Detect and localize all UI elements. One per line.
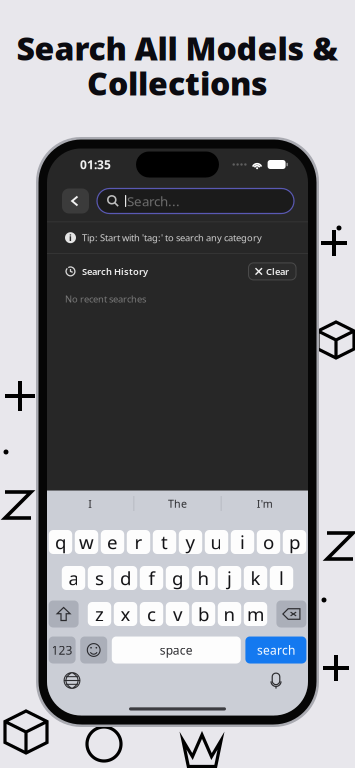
staticText: 123 xyxy=(52,642,73,658)
staticText: j xyxy=(227,566,232,590)
button[interactable]: r xyxy=(127,530,150,554)
staticText: i xyxy=(240,530,245,554)
button[interactable]: I'm xyxy=(221,490,308,516)
button[interactable]: b xyxy=(192,602,215,626)
button[interactable]: e xyxy=(101,530,124,554)
staticText: d xyxy=(120,566,131,590)
button[interactable]: Shift xyxy=(49,600,79,627)
staticText: Search... xyxy=(127,192,180,210)
button[interactable]: y xyxy=(179,530,202,554)
button[interactable]: o xyxy=(257,530,280,554)
staticText: Search History xyxy=(82,265,148,278)
staticText: e xyxy=(107,530,118,554)
button[interactable]: m xyxy=(244,602,267,626)
staticText: y xyxy=(185,530,195,554)
button[interactable]: h xyxy=(192,566,215,590)
button[interactable]: l xyxy=(270,566,293,590)
button[interactable]: 123 xyxy=(49,636,76,663)
button[interactable]: i xyxy=(231,530,254,554)
staticText: k xyxy=(250,566,260,590)
staticText: The xyxy=(168,496,187,511)
staticText: g xyxy=(172,566,183,590)
button[interactable]: Dictate xyxy=(263,669,289,691)
staticText: Collections xyxy=(87,62,268,104)
button[interactable]: g xyxy=(166,566,189,590)
button[interactable]: space xyxy=(112,636,241,663)
staticText: Clear xyxy=(266,265,289,278)
staticText: t xyxy=(161,530,168,554)
staticText: c xyxy=(147,602,156,626)
button[interactable]: a xyxy=(62,566,85,590)
button[interactable]: q xyxy=(49,530,72,554)
button[interactable]: p xyxy=(283,530,306,554)
button[interactable]: I xyxy=(47,490,133,516)
button[interactable]: u xyxy=(205,530,228,554)
button[interactable]: Search... xyxy=(97,188,294,213)
button[interactable]: Emoji xyxy=(80,636,107,663)
button[interactable]: k xyxy=(244,566,267,590)
button[interactable]: d xyxy=(114,566,137,590)
staticText: Search All Models & xyxy=(16,27,338,69)
staticText: space xyxy=(160,642,193,658)
button[interactable]: n xyxy=(218,602,241,626)
staticText: a xyxy=(68,566,78,590)
button[interactable]: x xyxy=(114,602,137,626)
button[interactable]: Delete xyxy=(276,600,306,627)
button[interactable]: s xyxy=(88,566,111,590)
staticText: No recent searches xyxy=(65,293,146,305)
staticText: search xyxy=(257,642,295,658)
staticText: h xyxy=(197,566,209,590)
button[interactable]: Clear xyxy=(248,263,296,280)
staticText: r xyxy=(134,530,142,554)
staticText: x xyxy=(120,602,130,626)
staticText: q xyxy=(55,530,66,554)
staticText: p xyxy=(289,530,300,554)
staticText: Tip: Start with 'tag:' to search any cat… xyxy=(82,231,262,244)
staticText: I'm xyxy=(257,496,273,511)
staticText: l xyxy=(279,566,284,590)
staticText: m xyxy=(247,602,264,626)
button[interactable]: w xyxy=(75,530,98,554)
button[interactable]: v xyxy=(166,602,189,626)
button[interactable]: Change keyboard xyxy=(59,669,85,691)
staticText: o xyxy=(263,530,274,554)
staticText: i xyxy=(69,231,72,244)
staticText: b xyxy=(198,602,209,626)
staticText: 01:35 xyxy=(80,156,111,172)
button[interactable]: j xyxy=(218,566,241,590)
button[interactable]: search xyxy=(245,636,306,663)
staticText: v xyxy=(173,602,182,626)
staticText: I xyxy=(88,496,92,511)
staticText: w xyxy=(79,530,94,554)
button[interactable]: Back xyxy=(62,188,89,213)
staticText: f xyxy=(148,566,154,590)
staticText: u xyxy=(210,530,222,554)
staticText: n xyxy=(223,602,235,626)
staticText: z xyxy=(95,602,104,626)
staticText: s xyxy=(95,566,104,590)
button[interactable]: t xyxy=(153,530,176,554)
button[interactable]: z xyxy=(88,602,111,626)
button[interactable]: f xyxy=(140,566,163,590)
button[interactable]: c xyxy=(140,602,163,626)
button[interactable]: The xyxy=(134,490,221,516)
